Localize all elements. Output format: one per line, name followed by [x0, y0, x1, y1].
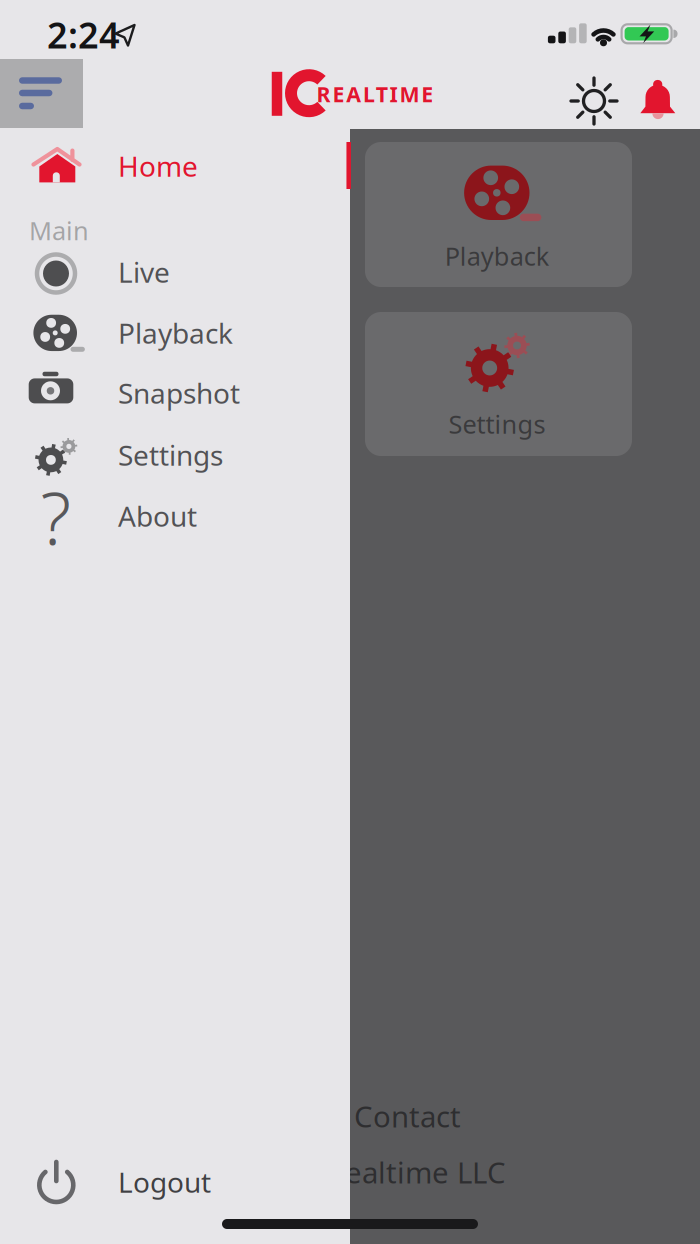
staticText: ?: [40, 469, 71, 565]
staticText: Playback: [445, 239, 550, 273]
button[interactable]: Settings: [365, 312, 632, 456]
staticText: Settings: [448, 407, 545, 441]
staticText: ealtime LLC: [345, 1152, 506, 1191]
staticText: About: [118, 497, 197, 535]
staticText: Snapshot: [118, 374, 240, 412]
staticText: 2:24: [47, 11, 120, 58]
staticText: Live: [118, 253, 170, 291]
button[interactable]: Day mode: [570, 77, 618, 125]
button[interactable]: Settings: [20, 426, 350, 484]
staticText: Settings: [118, 436, 223, 474]
button[interactable]: ?: [20, 487, 350, 545]
staticText: REALTIME: [317, 80, 433, 108]
button[interactable]: Menu: [0, 59, 83, 128]
staticText: Main: [29, 214, 89, 247]
button[interactable]: Home: [20, 137, 350, 195]
button[interactable]: Playback: [20, 304, 350, 362]
button[interactable]: Live: [20, 243, 350, 301]
staticText: Contact: [354, 1096, 461, 1135]
button[interactable]: Notifications: [635, 78, 679, 122]
button[interactable]: Playback: [365, 142, 632, 287]
staticText: Home: [118, 147, 198, 185]
button[interactable]: Snapshot: [20, 364, 350, 422]
button[interactable]: Logout: [20, 1153, 350, 1211]
staticText: Playback: [118, 314, 233, 352]
staticText: Logout: [118, 1163, 211, 1201]
